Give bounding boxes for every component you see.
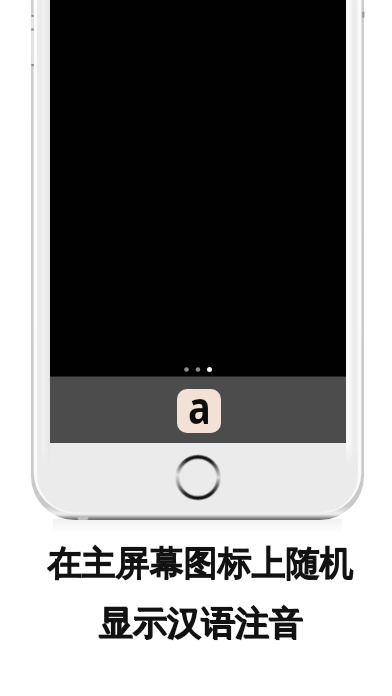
staticText: 在主屏幕图标上随机 (4, 543, 392, 696)
staticText: 在主屏幕图标上随机 (4, 542, 392, 696)
button[interactable]: Pinyin app icon (177, 389, 221, 433)
button[interactable]: Home (176, 455, 220, 499)
staticText: 显示汉语注音 (5, 603, 392, 696)
staticText: a (188, 377, 211, 437)
staticText: 显示汉语注音 (4, 602, 392, 696)
